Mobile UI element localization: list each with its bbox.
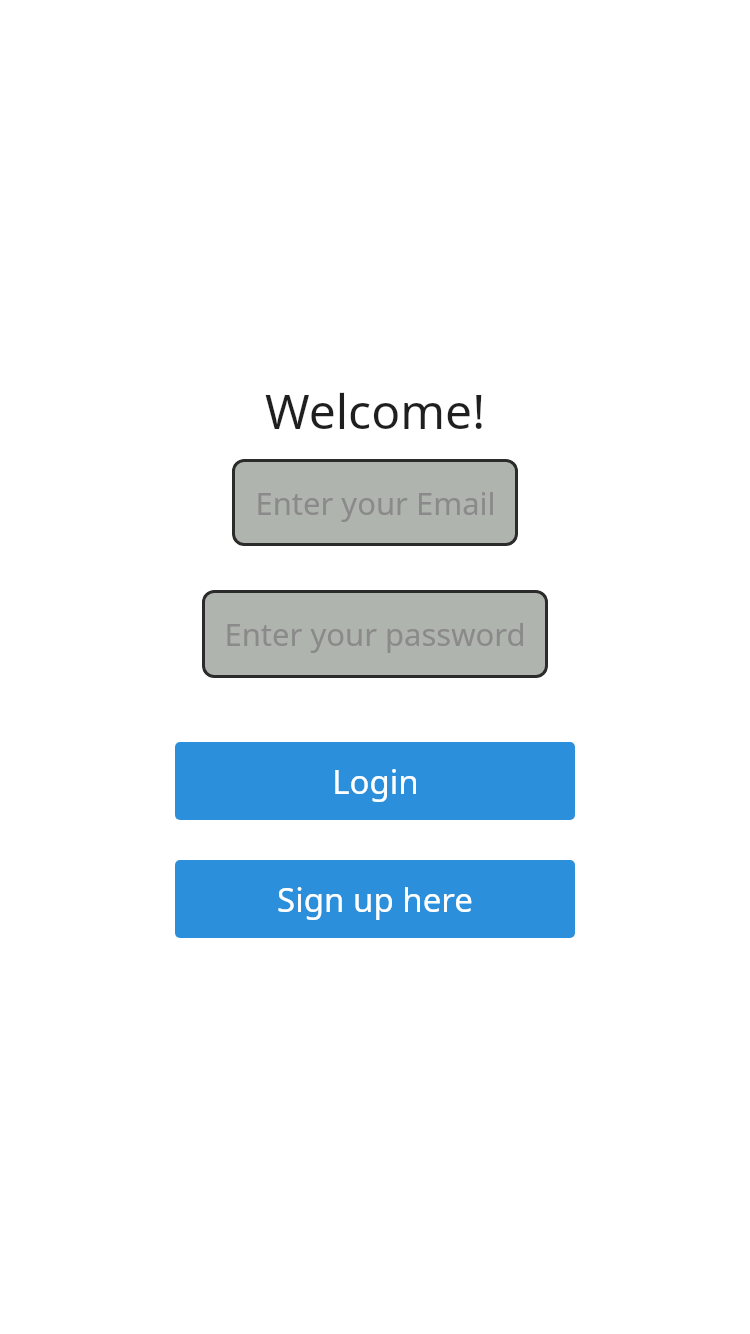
button[interactable]: Email input field [232,459,518,546]
staticText: Sign up here [277,877,473,922]
button[interactable]: Login [175,742,575,820]
staticText: Enter your Email [255,482,496,524]
staticText: Enter your password [224,613,526,655]
button[interactable]: Sign up here [175,860,575,938]
button[interactable]: Password input field [202,590,548,678]
staticText: Login [332,759,419,804]
staticText: Welcome! [0,378,750,1334]
